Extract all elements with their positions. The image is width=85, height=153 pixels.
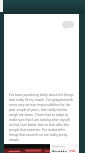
staticText: fontis [52, 148, 68, 152]
button[interactable]: Comments [4, 14, 79, 153]
button[interactable]: Comments [62, 21, 74, 30]
other: Made with fontis.com [50, 144, 79, 153]
staticText: I've been pondering lately about the thi… [9, 93, 74, 142]
staticText: .com [68, 148, 77, 152]
staticText: MADE WITH [52, 145, 65, 148]
button[interactable]: Made with fontis.com [4, 144, 79, 153]
